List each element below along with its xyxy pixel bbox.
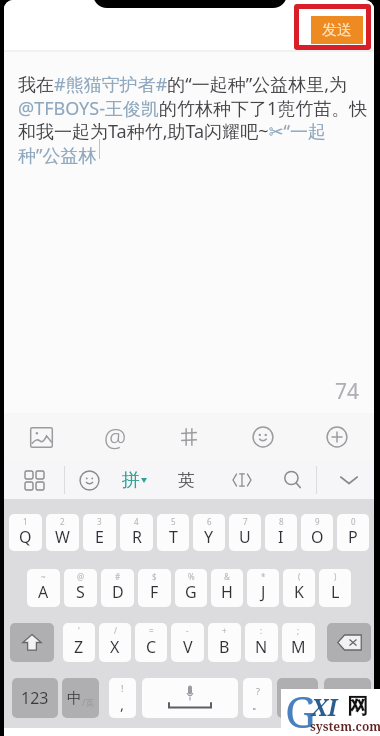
button[interactable]: Backspace xyxy=(327,623,371,662)
button[interactable]: 8 xyxy=(265,514,297,551)
button[interactable]: ) xyxy=(319,569,351,607)
button[interactable]: Mention someone xyxy=(78,413,152,461)
staticText: 7 xyxy=(243,516,248,527)
button[interactable]: Number keys xyxy=(12,678,58,718)
staticText: @ xyxy=(77,571,85,582)
staticText: S xyxy=(76,581,85,603)
button[interactable]: 发送 xyxy=(311,16,363,44)
button[interactable]: 5 xyxy=(157,514,189,551)
button[interactable]: Hide keyboard xyxy=(324,461,374,499)
button[interactable]: : xyxy=(245,623,278,662)
staticText: 6 xyxy=(207,516,212,527)
button[interactable]: @ xyxy=(64,569,97,607)
staticText: F xyxy=(150,581,159,603)
staticText: 发送 xyxy=(322,21,352,40)
button[interactable]: Symbols xyxy=(277,678,318,718)
staticText: ( xyxy=(298,571,301,582)
staticText: XI xyxy=(311,691,338,722)
staticText: : xyxy=(260,625,263,636)
button[interactable]: ( xyxy=(283,569,315,607)
button[interactable]: 7 xyxy=(229,514,261,551)
staticText: Z xyxy=(74,636,84,658)
staticText: $ xyxy=(152,571,157,582)
staticText: 。 xyxy=(252,698,263,712)
staticText: Y xyxy=(204,526,214,548)
button[interactable]: % xyxy=(175,569,207,607)
staticText: D xyxy=(112,581,124,603)
button[interactable]: Comma xyxy=(109,678,136,718)
button[interactable]: More options xyxy=(300,413,374,461)
staticText: 8 xyxy=(279,516,284,527)
staticText: + xyxy=(222,625,227,636)
staticText: E xyxy=(95,526,104,548)
button[interactable]: 2 xyxy=(46,514,79,551)
button[interactable]: 拼 xyxy=(111,461,157,499)
button[interactable]: 英 xyxy=(166,461,206,499)
button[interactable]: - xyxy=(171,623,204,662)
button[interactable]: Add photo xyxy=(4,413,78,461)
button[interactable]: ; xyxy=(282,623,315,662)
staticText: J xyxy=(261,581,266,603)
staticText: system.com xyxy=(310,718,380,734)
staticText: 9 xyxy=(315,516,320,527)
staticText: 0 xyxy=(351,516,356,527)
staticText: 中 xyxy=(67,689,82,708)
button[interactable]: Insert emoji xyxy=(226,413,300,461)
button[interactable]: 3 xyxy=(83,514,116,551)
button[interactable]: Keyboard layout xyxy=(17,463,51,497)
button[interactable]: Add topic xyxy=(152,413,226,461)
button[interactable]: # xyxy=(101,569,134,607)
button[interactable]: * xyxy=(247,569,279,607)
staticText: O xyxy=(311,526,324,548)
staticText: # xyxy=(115,571,121,582)
staticText: 5 xyxy=(171,516,176,527)
button[interactable]: 4 xyxy=(120,514,153,551)
button[interactable]: $ xyxy=(138,569,171,607)
button[interactable]: Space xyxy=(142,678,238,718)
staticText: * xyxy=(261,571,266,582)
button[interactable]: Shift xyxy=(10,623,54,662)
button[interactable]: 1 xyxy=(9,514,42,551)
button[interactable]: 6 xyxy=(193,514,225,551)
staticText: 网 xyxy=(347,693,368,719)
staticText: V xyxy=(183,636,193,658)
staticText: % xyxy=(188,571,195,582)
button[interactable]: ' xyxy=(63,623,95,662)
button[interactable]: Switch Chinese English xyxy=(62,678,99,718)
staticText: 4 xyxy=(134,516,139,527)
staticText: 2 xyxy=(60,516,65,527)
button[interactable]: / xyxy=(99,623,131,662)
button[interactable]: 9 xyxy=(301,514,333,551)
staticText: /英 xyxy=(82,696,95,708)
staticText: U xyxy=(239,526,251,548)
button[interactable]: Enter xyxy=(324,678,371,718)
button[interactable]: + xyxy=(208,623,241,662)
staticText: G xyxy=(185,581,197,603)
staticText: P xyxy=(348,526,358,548)
staticText: - xyxy=(186,625,189,636)
button[interactable]: & xyxy=(211,569,243,607)
staticText: 拼 xyxy=(122,469,140,492)
button[interactable]: Move cursor xyxy=(222,461,262,499)
staticText: Q xyxy=(19,526,32,548)
button[interactable]: Search xyxy=(272,461,314,499)
staticText: C xyxy=(146,636,157,658)
button[interactable]: ~ xyxy=(27,569,60,607)
staticText: K xyxy=(294,581,304,603)
staticText: 我在#熊猫守护者#的“一起种”公益林里,为@TFBOYS-王俊凯的竹林种下了1蔸… xyxy=(18,72,368,167)
staticText: G xyxy=(285,681,317,728)
button[interactable]: Period xyxy=(243,678,272,718)
staticText: M xyxy=(291,636,306,658)
staticText: 1 xyxy=(23,516,28,527)
button[interactable]: = xyxy=(135,623,167,662)
staticText: 3 xyxy=(97,516,102,527)
staticText: @ xyxy=(104,420,127,454)
staticText: T xyxy=(169,526,178,548)
staticText: ) xyxy=(334,571,337,582)
button[interactable]: Emoji xyxy=(71,462,107,498)
staticText: ? xyxy=(256,685,260,697)
staticText: 英 xyxy=(178,470,195,491)
staticText: 123 xyxy=(21,687,49,709)
button[interactable]: 0 xyxy=(337,514,369,551)
staticText: X xyxy=(110,636,120,658)
